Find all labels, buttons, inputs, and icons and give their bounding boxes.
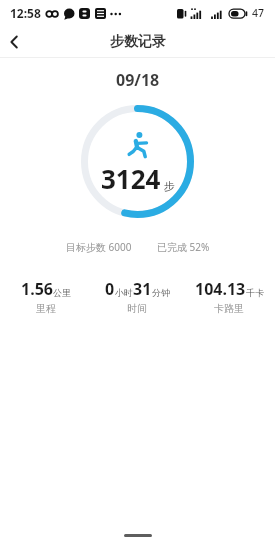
staticText: 目标步数 6000 <box>66 240 132 254</box>
staticText: 分钟 <box>152 287 170 298</box>
staticText: 里程 <box>36 302 56 315</box>
staticText: 卡路里 <box>214 302 244 315</box>
staticText: 31 <box>133 278 152 300</box>
staticText: 47 <box>252 6 265 20</box>
staticText: 104.13 <box>195 278 246 300</box>
staticText: 小时 <box>115 287 133 298</box>
button[interactable]: 0 <box>91 278 183 315</box>
button[interactable]: 1.56 <box>0 278 91 315</box>
button[interactable] <box>3 31 25 53</box>
staticText: 0 <box>105 278 115 300</box>
staticText: 步 <box>164 179 175 193</box>
staticText: 时间 <box>127 302 147 315</box>
staticText: 已完成 52% <box>157 240 210 254</box>
staticText: 千卡 <box>246 287 264 298</box>
staticText: 3124 <box>101 161 161 196</box>
staticText: 09/18 <box>116 69 160 91</box>
staticText: 12:58 <box>10 5 41 21</box>
button[interactable]: 104.13 <box>183 278 275 315</box>
staticText: 公里 <box>53 287 71 298</box>
staticText: 1.56 <box>21 278 53 300</box>
staticText: 步数记录 <box>110 33 166 51</box>
